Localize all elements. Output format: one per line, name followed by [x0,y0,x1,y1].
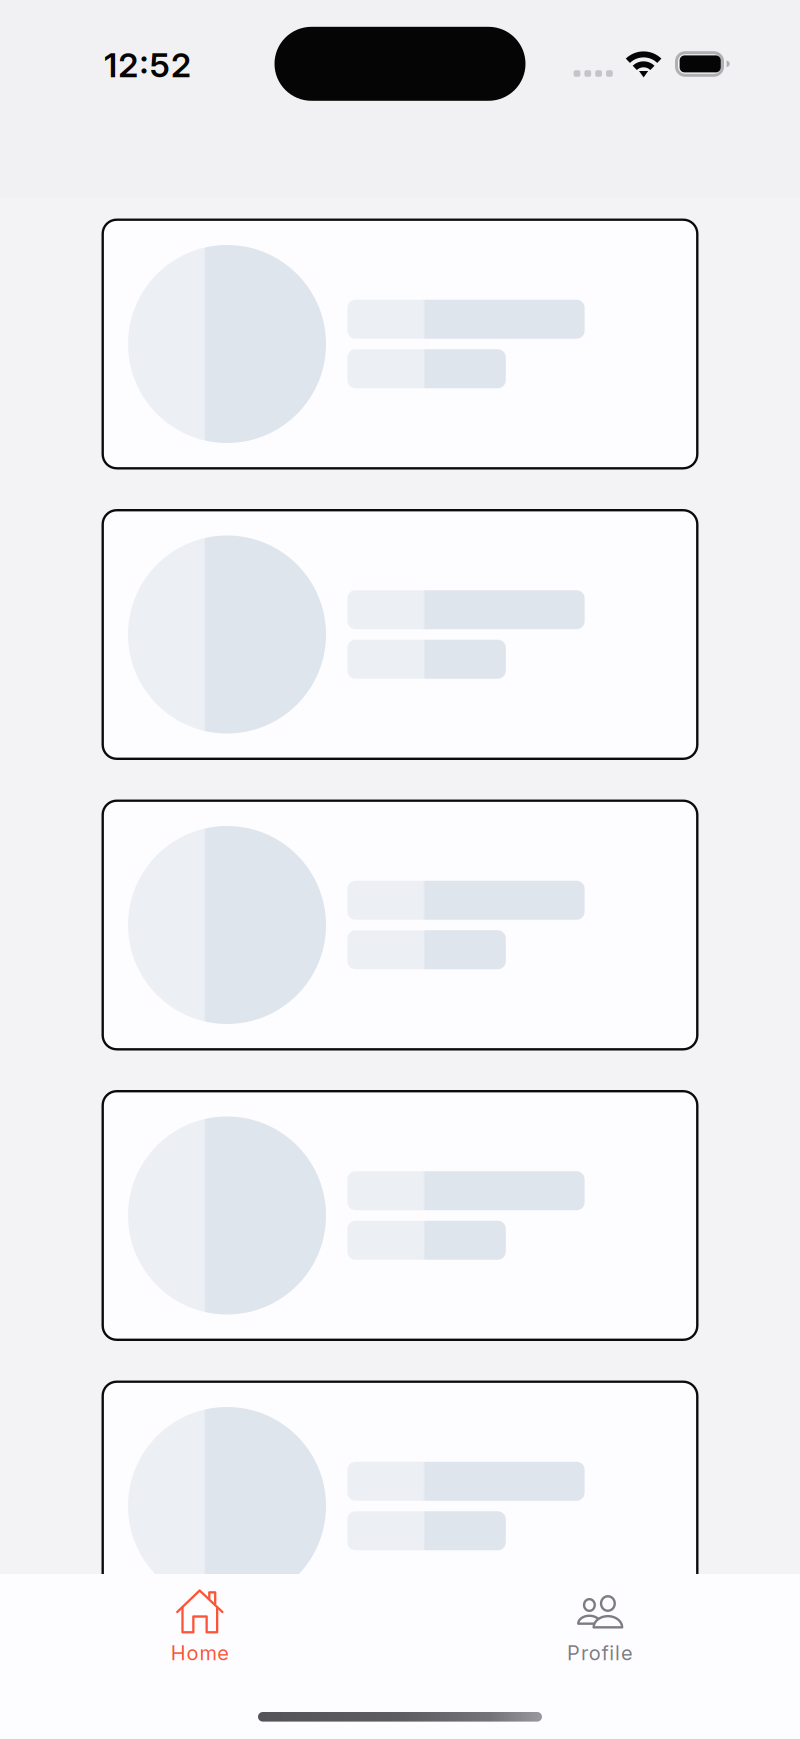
staticText: 12:52 [104,45,191,85]
staticText: Profile [567,1641,633,1665]
button[interactable]: Home [100,1574,300,1674]
button[interactable]: Profile [500,1574,700,1674]
staticText: Home [171,1641,229,1665]
